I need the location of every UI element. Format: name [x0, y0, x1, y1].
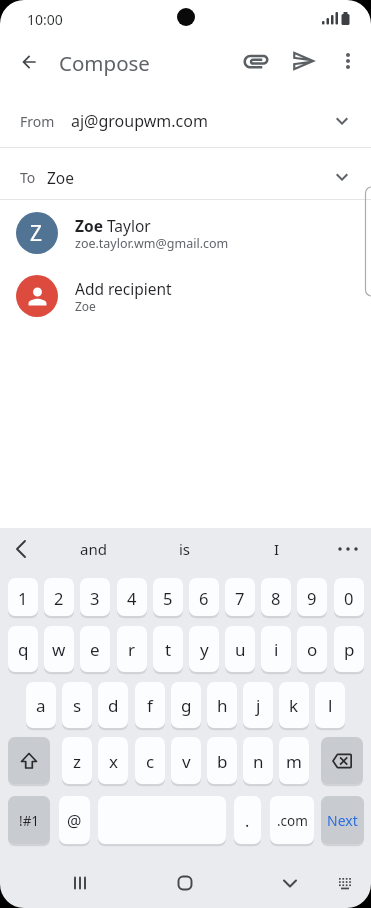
- staticText: Next: [327, 811, 358, 830]
- staticText: is: [179, 539, 191, 559]
- button[interactable]: w: [44, 626, 74, 673]
- staticText: 9: [307, 587, 317, 609]
- staticText: q: [18, 638, 29, 661]
- staticText: z: [73, 750, 81, 773]
- staticText: !#1: [19, 812, 40, 830]
- staticText: v: [182, 750, 191, 773]
- button[interactable]: m: [279, 737, 309, 785]
- button[interactable]: [321, 737, 363, 785]
- staticText: 4: [127, 587, 137, 609]
- staticText: w: [52, 638, 66, 661]
- staticText: I: [274, 539, 280, 559]
- button[interactable]: [336, 49, 360, 73]
- staticText: Add recipient: [75, 278, 172, 299]
- button[interactable]: o: [297, 626, 327, 673]
- button[interactable]: k: [279, 682, 309, 729]
- button[interactable]: .com: [270, 796, 314, 845]
- button[interactable]: [0, 528, 42, 570]
- button[interactable]: [272, 865, 308, 901]
- staticText: h: [217, 694, 228, 717]
- button[interactable]: c: [135, 737, 165, 785]
- button[interactable]: [167, 865, 203, 901]
- button[interactable]: z: [62, 737, 92, 785]
- staticText: From: [20, 112, 55, 131]
- button[interactable]: [8, 737, 50, 785]
- button[interactable]: @: [59, 796, 90, 845]
- staticText: x: [109, 750, 118, 773]
- button[interactable]: 8: [261, 578, 291, 617]
- staticText: .: [245, 810, 250, 832]
- button[interactable]: f: [135, 682, 165, 729]
- button[interactable]: g: [171, 682, 201, 729]
- button[interactable]: q: [8, 626, 38, 673]
- button[interactable]: p: [334, 626, 364, 673]
- staticText: t: [165, 638, 172, 661]
- staticText: g: [181, 694, 192, 717]
- staticText: n: [253, 750, 264, 773]
- staticText: 0: [344, 587, 354, 609]
- staticText: o: [307, 638, 318, 661]
- staticText: s: [73, 694, 82, 717]
- staticText: Compose: [59, 49, 150, 77]
- staticText: aj@groupwm.com: [71, 110, 208, 132]
- button[interactable]: [241, 46, 271, 76]
- button[interactable]: 9: [297, 578, 327, 617]
- button[interactable]: 1: [8, 578, 38, 617]
- button[interactable]: b: [207, 737, 237, 785]
- button[interactable]: [17, 50, 41, 74]
- staticText: Zoe Taylor: [75, 215, 151, 236]
- button[interactable]: .: [234, 796, 261, 845]
- staticText: a: [36, 694, 46, 717]
- button[interactable]: 3: [80, 578, 110, 617]
- staticText: 2: [54, 587, 64, 609]
- button[interactable]: h: [207, 682, 237, 729]
- button[interactable]: [98, 796, 226, 845]
- button[interactable]: 2: [44, 578, 74, 617]
- button[interactable]: Add recipient: [0, 267, 371, 323]
- button[interactable]: x: [98, 737, 128, 785]
- staticText: 1: [18, 587, 28, 609]
- button[interactable]: !#1: [8, 796, 50, 845]
- staticText: .com: [277, 812, 308, 830]
- button[interactable]: 6: [189, 578, 219, 617]
- button[interactable]: [330, 868, 360, 898]
- button[interactable]: y: [189, 626, 219, 673]
- button[interactable]: and: [55, 528, 131, 570]
- button[interactable]: Z: [0, 207, 371, 263]
- button[interactable]: 0: [334, 578, 364, 617]
- button[interactable]: d: [98, 682, 128, 729]
- button[interactable]: r: [117, 626, 147, 673]
- staticText: d: [108, 694, 119, 717]
- button[interactable]: [327, 528, 369, 570]
- staticText: m: [286, 750, 302, 773]
- button[interactable]: n: [243, 737, 273, 785]
- button[interactable]: t: [153, 626, 183, 673]
- button[interactable]: [291, 48, 317, 74]
- staticText: Zoe: [47, 167, 74, 188]
- staticText: b: [217, 750, 228, 773]
- button[interactable]: s: [62, 682, 92, 729]
- staticText: f: [147, 694, 153, 717]
- staticText: 7: [235, 587, 245, 609]
- button[interactable]: I: [239, 528, 315, 570]
- button[interactable]: 5: [153, 578, 183, 617]
- button[interactable]: v: [171, 737, 201, 785]
- staticText: 8: [271, 587, 281, 609]
- button[interactable]: a: [26, 682, 56, 729]
- button[interactable]: l: [315, 682, 345, 729]
- button[interactable]: [62, 865, 98, 901]
- staticText: y: [200, 638, 209, 661]
- button[interactable]: Next: [321, 796, 364, 845]
- button[interactable]: 4: [117, 578, 147, 617]
- button[interactable]: j: [243, 682, 273, 729]
- staticText: @: [67, 810, 82, 832]
- button[interactable]: i: [261, 626, 291, 673]
- button[interactable]: 7: [225, 578, 255, 617]
- staticText: i: [274, 638, 279, 661]
- button[interactable]: is: [147, 528, 223, 570]
- button[interactable]: From: [0, 96, 371, 146]
- button[interactable]: To: [0, 152, 371, 202]
- staticText: 10:00: [27, 10, 63, 29]
- button[interactable]: e: [80, 626, 110, 673]
- button[interactable]: u: [225, 626, 255, 673]
